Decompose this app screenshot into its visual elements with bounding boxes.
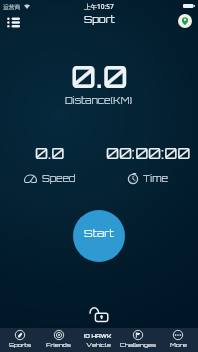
staticText: Challenges — [120, 341, 156, 348]
staticText: Sports — [9, 341, 31, 348]
staticText: 0.0 — [35, 143, 65, 162]
button[interactable]: Menu — [3, 12, 23, 32]
staticText: Friends — [46, 341, 71, 348]
staticText: Start — [84, 226, 114, 239]
staticText: IO HAWK — [84, 332, 112, 339]
staticText: 0.0 — [71, 58, 128, 96]
button[interactable]: Sports — [0, 328, 39, 352]
button[interactable]: Start — [73, 210, 125, 262]
staticText: Speed — [42, 172, 76, 184]
button[interactable]: More — [158, 328, 198, 352]
button[interactable]: IO HAWK — [78, 328, 118, 352]
staticText: 上午10:57 — [84, 2, 114, 11]
staticText: Vehicle — [86, 341, 111, 348]
staticText: Time — [143, 172, 169, 184]
staticText: 00:00:00 — [106, 143, 191, 162]
staticText: Sport — [84, 13, 115, 26]
staticText: 运营商 — [3, 3, 21, 10]
staticText: More — [170, 341, 187, 348]
button[interactable]: Unlock — [87, 302, 111, 326]
button[interactable]: Location — [178, 14, 192, 28]
button[interactable]: Challenges — [118, 328, 158, 352]
button[interactable]: Friends — [39, 328, 78, 352]
staticText: Distance(KM) — [65, 94, 133, 106]
